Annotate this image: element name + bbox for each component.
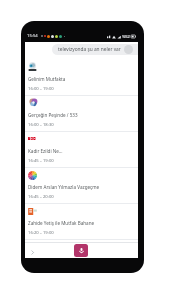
staticText: Didem Arslan Yılmazla Vazgeçme xyxy=(28,184,100,190)
button[interactable]: Didem Arslan Yılmazla Vazgeçme xyxy=(25,168,138,204)
button[interactable]: Microphone xyxy=(74,244,88,257)
staticText: 16:00 – 18:30 xyxy=(28,122,54,128)
button[interactable]: Gelinim Mutfakta xyxy=(25,60,138,96)
button[interactable]: Kadir Ezildi Ne... xyxy=(25,132,138,168)
staticText: 15:54 xyxy=(27,33,38,39)
button[interactable]: televizyonda şu an neler var xyxy=(52,44,138,55)
staticText: Gelinim Mutfakta xyxy=(28,76,66,82)
staticText: 16:45 – 20:00 xyxy=(28,194,54,200)
staticText: %52 xyxy=(122,34,130,39)
button[interactable]: Next xyxy=(28,248,37,257)
staticText: Kadir Ezildi Ne... xyxy=(28,148,63,154)
staticText: televizyonda şu an neler var xyxy=(58,46,121,53)
staticText: Gerçeğin Peşinde / 533 xyxy=(28,112,78,118)
button[interactable]: Gerçeğin Peşinde / 533 xyxy=(25,96,138,132)
staticText: 16:20 – 19:00 xyxy=(28,230,54,236)
staticText: 16:45 – 19:00 xyxy=(28,158,54,164)
staticText: Zahide Yetiş ile Mutfak Bahane xyxy=(28,220,95,226)
button[interactable]: Zahide Yetiş ile Mutfak Bahane xyxy=(25,204,138,240)
staticText: 16:00 – 19:00 xyxy=(28,86,54,92)
